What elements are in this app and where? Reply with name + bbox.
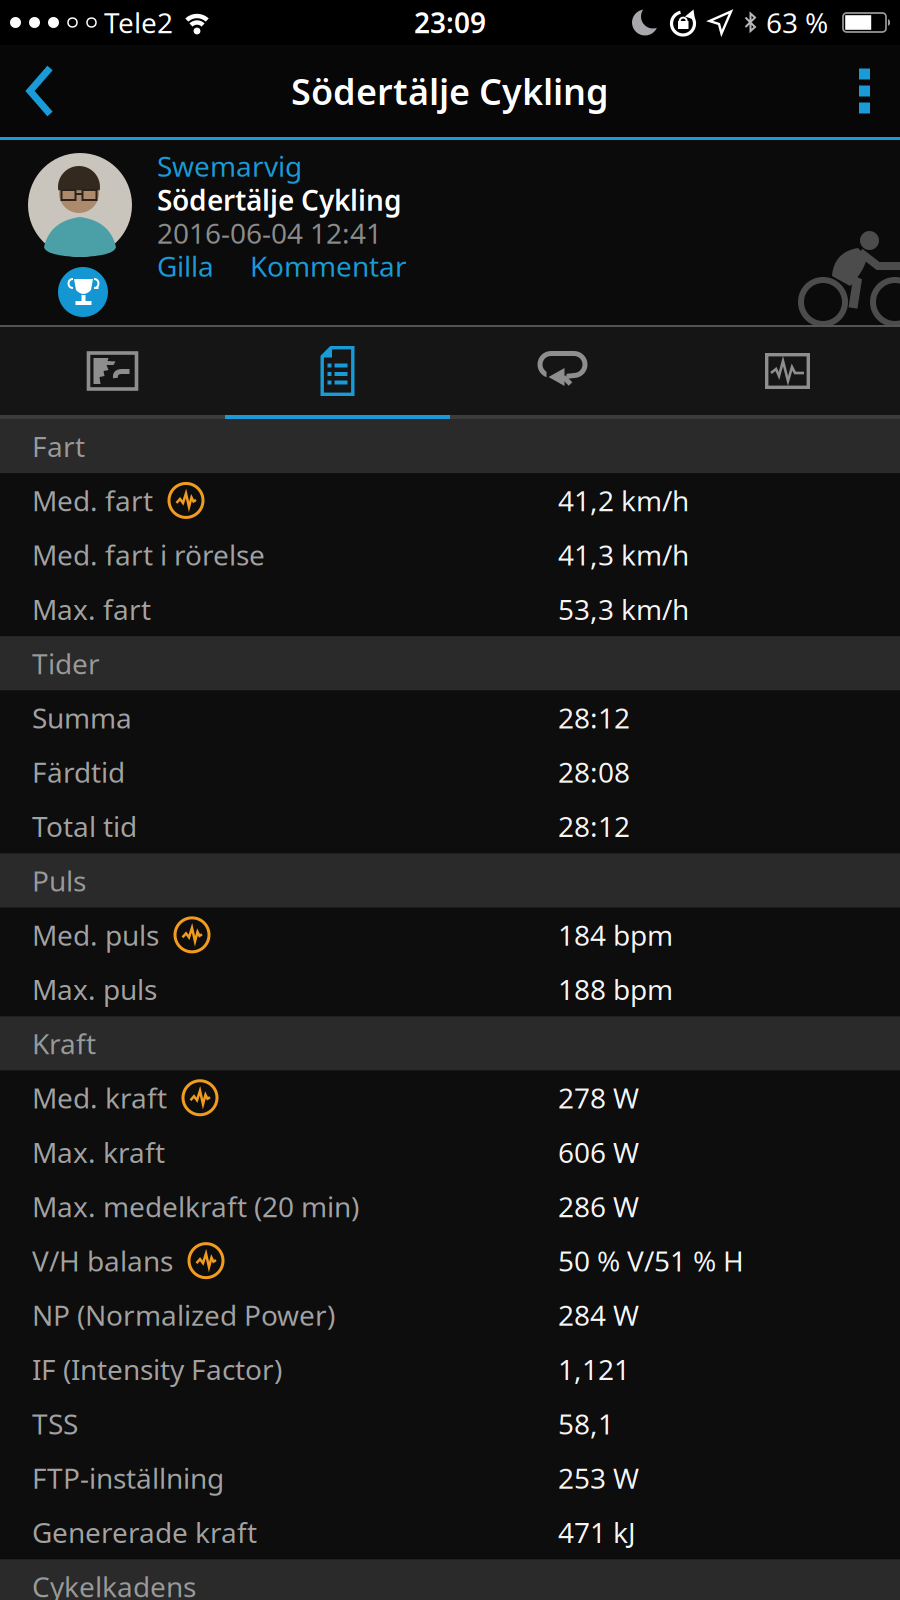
- staticText: 28:12: [558, 699, 630, 736]
- staticText: Med. kraft: [32, 1079, 167, 1116]
- staticText: 284 W: [558, 1296, 639, 1334]
- staticText: V/H balans: [32, 1242, 173, 1279]
- staticText: Tider: [32, 645, 100, 682]
- staticText: Kraft: [32, 1025, 96, 1062]
- staticText: NP (Normalized Power): [32, 1296, 335, 1334]
- staticText: 28:08: [558, 753, 630, 791]
- staticText: IF (Intensity Factor): [32, 1351, 282, 1388]
- button[interactable]: Map and photos: [0, 327, 225, 415]
- staticText: 63 %: [766, 4, 828, 41]
- button[interactable]: Charts: [675, 327, 900, 415]
- button[interactable]: Profile Swemarvig: [0, 140, 160, 325]
- staticText: Södertälje Cykling: [291, 67, 609, 115]
- staticText: 253 W: [558, 1459, 639, 1496]
- staticText: Färdtid: [32, 753, 125, 791]
- staticText: 278 W: [558, 1079, 639, 1116]
- staticText: Max. puls: [32, 971, 157, 1008]
- staticText: Med. fart: [32, 482, 153, 519]
- staticText: Max. medelkraft (20 min): [32, 1188, 359, 1225]
- staticText: 471 kJ: [558, 1514, 636, 1551]
- staticText: 41,2 km/h: [558, 482, 689, 519]
- staticText: 286 W: [558, 1188, 639, 1225]
- staticText: Tele2: [104, 4, 173, 41]
- button[interactable]: Swemarvig: [157, 147, 302, 185]
- staticText: Genererade kraft: [32, 1514, 257, 1551]
- staticText: 50 % V/51 % H: [558, 1242, 744, 1279]
- staticText: 606 W: [558, 1133, 639, 1171]
- staticText: Swemarvig: [157, 147, 302, 185]
- staticText: 2016-06-04 12:41: [157, 214, 382, 252]
- staticText: Total tid: [32, 808, 137, 845]
- staticText: 58,1: [558, 1405, 614, 1442]
- staticText: Max. fart: [32, 590, 151, 628]
- staticText: Södertälje Cykling: [157, 181, 402, 219]
- staticText: Cykelkadens: [32, 1568, 196, 1600]
- button[interactable]: Kommentar: [250, 247, 407, 285]
- staticText: 28:12: [558, 808, 630, 845]
- staticText: 188 bpm: [558, 971, 673, 1008]
- button[interactable]: More options: [839, 68, 900, 113]
- button[interactable]: Med. puls: [0, 908, 900, 962]
- button[interactable]: Back: [0, 65, 74, 117]
- button[interactable]: Gilla: [157, 247, 214, 285]
- staticText: TSS: [32, 1405, 78, 1442]
- button[interactable]: Laps: [450, 327, 675, 415]
- staticText: Gilla: [157, 247, 214, 285]
- staticText: Summa: [32, 699, 132, 736]
- staticText: Max. kraft: [32, 1133, 165, 1171]
- staticText: 53,3 km/h: [558, 590, 689, 628]
- staticText: 184 bpm: [558, 916, 673, 953]
- staticText: 1,121: [558, 1351, 630, 1388]
- button[interactable]: Med. kraft: [0, 1071, 900, 1125]
- staticText: Puls: [32, 862, 86, 899]
- staticText: 23:09: [414, 4, 486, 41]
- staticText: Fart: [32, 428, 85, 465]
- staticText: FTP-inställning: [32, 1459, 224, 1496]
- staticText: 41,3 km/h: [558, 536, 689, 573]
- button[interactable]: Med. fart: [0, 473, 900, 528]
- button[interactable]: Details: [225, 327, 450, 415]
- staticText: Med. puls: [32, 916, 159, 953]
- button[interactable]: V/H balans: [0, 1233, 900, 1288]
- staticText: Kommentar: [250, 247, 407, 285]
- staticText: Med. fart i rörelse: [32, 536, 265, 573]
